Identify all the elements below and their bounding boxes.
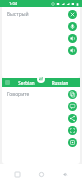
button[interactable]: Copy bbox=[68, 90, 77, 99]
button[interactable]: Back bbox=[58, 168, 71, 181]
button[interactable]: Speak bbox=[68, 34, 77, 43]
staticText: Быстрый bbox=[7, 11, 29, 18]
button[interactable]: Comment bbox=[68, 102, 77, 111]
button[interactable]: Russian bbox=[43, 80, 77, 86]
staticText: 1:04 bbox=[9, 1, 17, 6]
button[interactable]: Favourite bbox=[68, 138, 77, 147]
button[interactable]: Volume bbox=[68, 46, 77, 55]
button[interactable]: Home bbox=[35, 168, 48, 181]
button[interactable]: Fullscreen bbox=[68, 126, 77, 135]
button[interactable]: Serbian bbox=[10, 80, 43, 86]
button[interactable]: Share bbox=[68, 114, 77, 123]
button[interactable]: Recents bbox=[11, 168, 24, 181]
button[interactable]: Swap languages bbox=[37, 75, 45, 83]
button[interactable]: Microphone bbox=[68, 22, 77, 31]
staticText: Говорите bbox=[7, 91, 30, 98]
button[interactable]: Menu bbox=[5, 80, 10, 85]
button[interactable]: Clear bbox=[68, 10, 77, 19]
